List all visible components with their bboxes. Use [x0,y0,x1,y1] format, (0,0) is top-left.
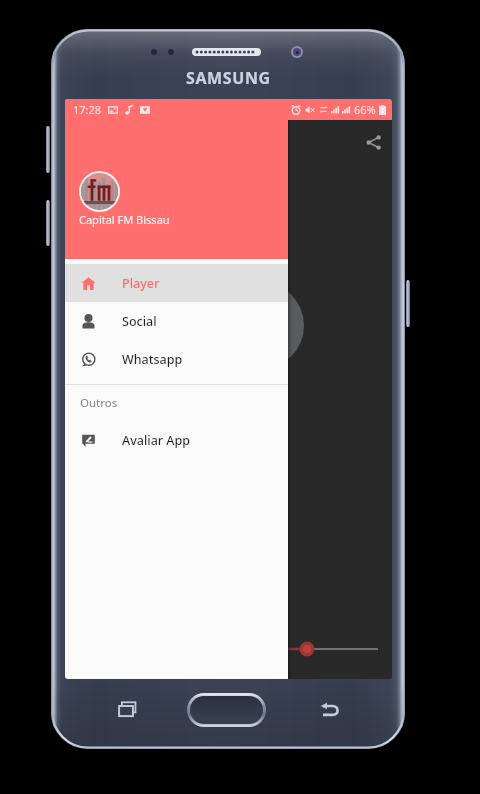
button[interactable]: Home [187,693,266,727]
button[interactable]: Avaliar App [65,421,288,459]
staticText: Social [122,313,157,330]
button[interactable]: Recents [115,697,141,723]
staticText: Avaliar App [122,432,191,449]
button[interactable]: Share [361,130,385,154]
staticText: Player [122,275,160,292]
staticText: Capital FM Bissau [79,212,170,227]
staticText: Whatsapp [122,351,183,368]
button[interactable]: Social [65,302,288,340]
button[interactable]: Whatsapp [65,340,288,378]
staticText: 66% [354,102,376,117]
staticText: 17:28 [73,102,102,117]
staticText: Outros [80,395,118,411]
button[interactable]: Player [65,264,288,302]
staticText: SAMSUNG [186,67,271,89]
button[interactable]: Back [317,697,343,723]
